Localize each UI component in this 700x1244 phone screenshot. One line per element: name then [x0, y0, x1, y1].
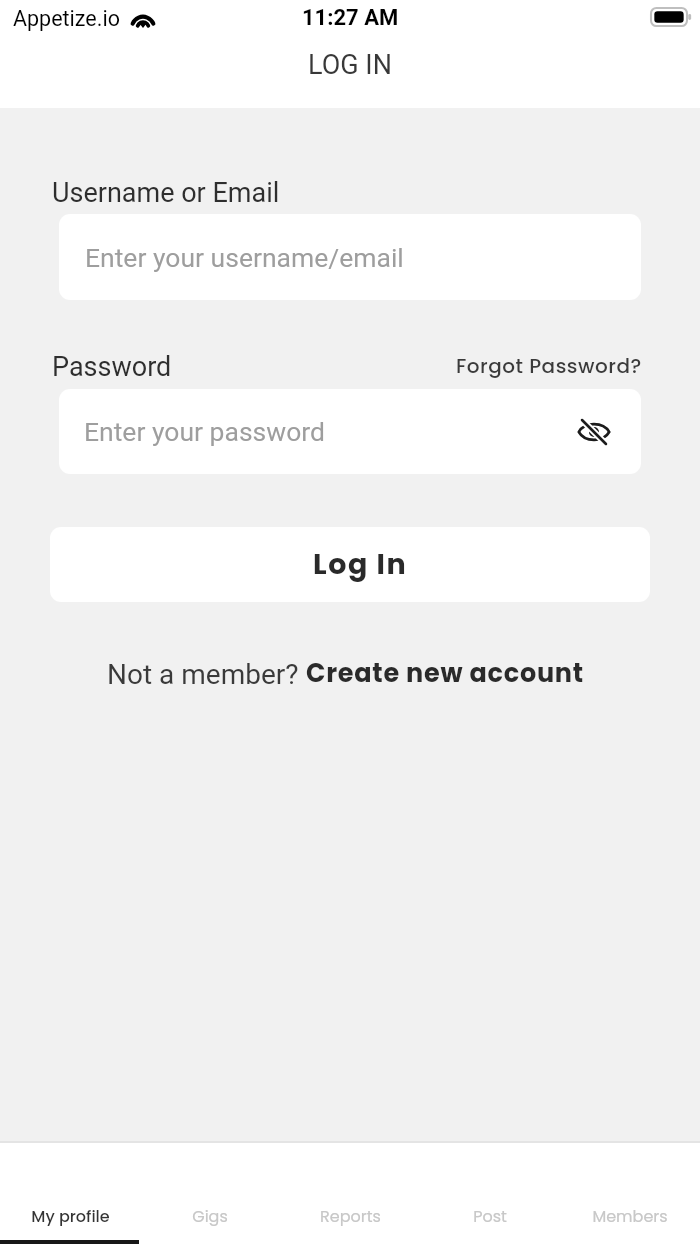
button[interactable]: Reports: [280, 1143, 420, 1244]
button[interactable]: Log In: [50, 527, 650, 602]
staticText: Enter your username/email: [85, 242, 404, 273]
button[interactable]: Create new account: [306, 655, 584, 691]
staticText: My profile: [31, 1205, 110, 1227]
button[interactable]: Post: [420, 1143, 560, 1244]
staticText: Enter your password: [84, 416, 325, 447]
button[interactable]: Show password: [572, 410, 616, 454]
staticText: Appetize.io: [13, 6, 120, 31]
staticText: Forgot Password?: [456, 352, 642, 380]
button[interactable]: Gigs: [140, 1143, 280, 1244]
staticText: Not a member?: [107, 658, 306, 691]
staticText: Post: [473, 1205, 507, 1227]
button[interactable]: Forgot Password?: [456, 352, 642, 380]
staticText: Log In: [313, 544, 408, 584]
button[interactable]: Enter your username/email: [59, 214, 641, 300]
staticText: Create new account: [306, 655, 584, 691]
button[interactable]: Members: [560, 1143, 700, 1244]
staticText: LOG IN: [308, 49, 392, 81]
staticText: 11:27 AM: [302, 5, 399, 31]
staticText: Members: [592, 1205, 668, 1227]
button[interactable]: Enter your password: [59, 389, 641, 474]
staticText: Username or Email: [52, 177, 280, 209]
button[interactable]: My profile: [0, 1143, 140, 1244]
staticText: Gigs: [192, 1205, 228, 1227]
staticText: Reports: [320, 1205, 381, 1227]
staticText: Password: [52, 351, 172, 383]
